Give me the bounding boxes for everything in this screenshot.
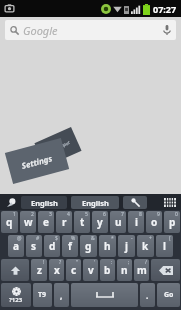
staticText: T9: [38, 290, 47, 300]
button[interactable]: Voice input: [123, 196, 147, 209]
staticText: ;: [128, 259, 130, 266]
button[interactable]: w: [20, 211, 36, 233]
staticText: :: [111, 259, 113, 266]
staticText: 7: [121, 211, 124, 218]
button[interactable]: j: [118, 235, 135, 257]
staticText: ?123: [9, 296, 23, 304]
button[interactable]: m: [134, 259, 149, 281]
button[interactable]: Google: [5, 20, 176, 40]
button[interactable]: h: [99, 235, 116, 257]
staticText: t: [80, 215, 85, 229]
button[interactable]: g: [80, 235, 97, 257]
staticText: h: [104, 239, 111, 253]
button[interactable]: i: [128, 211, 144, 233]
staticText: 3: [49, 211, 52, 218]
staticText: g: [85, 239, 92, 253]
staticText: l: [163, 239, 166, 253]
staticText: *: [111, 235, 114, 242]
staticText: o: [151, 215, 158, 229]
staticText: ?: [59, 259, 62, 266]
button[interactable]: r: [56, 211, 72, 233]
button[interactable]: b: [100, 259, 115, 281]
staticText: (: [169, 235, 171, 242]
staticText: -: [131, 235, 133, 242]
button[interactable]: l: [156, 235, 173, 257]
button[interactable]: t: [74, 211, 90, 233]
staticText: k: [142, 239, 149, 253]
staticText: +: [149, 235, 152, 242]
button[interactable]: Voice search: [158, 21, 176, 39]
button[interactable]: .: [140, 283, 155, 307]
staticText: n: [121, 263, 128, 277]
staticText: $: [55, 235, 58, 242]
staticText: ": [76, 259, 79, 266]
staticText: 8: [139, 211, 142, 218]
button[interactable]: Space: [71, 283, 138, 307]
staticText: p: [169, 215, 176, 229]
staticText: j: [125, 239, 128, 253]
staticText: 4: [67, 211, 70, 218]
staticText: #: [36, 235, 40, 242]
button[interactable]: q: [1, 211, 18, 233]
staticText: English: [31, 198, 58, 208]
button[interactable]: English: [71, 196, 119, 209]
button[interactable]: u: [110, 211, 126, 233]
staticText: 1: [13, 211, 16, 218]
staticText: !: [43, 259, 45, 266]
button[interactable]: x: [49, 259, 64, 281]
staticText: 2: [31, 211, 34, 218]
button[interactable]: ,: [54, 283, 69, 307]
staticText: 07:27: [153, 3, 177, 15]
button[interactable]: Go: [157, 283, 180, 307]
staticText: 6: [103, 211, 106, 218]
staticText: m: [137, 263, 147, 277]
button[interactable]: T9: [33, 283, 52, 307]
staticText: s: [31, 239, 37, 253]
staticText: v: [88, 263, 94, 277]
staticText: 0: [175, 211, 178, 218]
staticText: Google: [23, 23, 58, 38]
button[interactable]: p: [164, 211, 180, 233]
staticText: i: [135, 215, 138, 229]
staticText: &: [91, 235, 95, 242]
staticText: q: [6, 215, 13, 229]
staticText: b: [104, 263, 111, 277]
button[interactable]: d: [44, 235, 60, 257]
staticText: 5: [85, 211, 88, 218]
staticText: Switch input: [46, 139, 71, 155]
staticText: ,: [60, 290, 63, 301]
button[interactable]: c: [66, 259, 81, 281]
staticText: /: [145, 259, 147, 266]
staticText: f: [68, 239, 72, 253]
staticText: @: [17, 235, 22, 242]
staticText: x: [54, 263, 60, 277]
staticText: 9: [157, 211, 160, 218]
staticText: Settings: [20, 152, 54, 171]
button[interactable]: n: [117, 259, 132, 281]
button[interactable]: s: [26, 235, 42, 257]
staticText: a: [13, 239, 19, 253]
staticText: Go: [164, 290, 174, 300]
button[interactable]: a: [8, 235, 24, 257]
button[interactable]: v: [83, 259, 98, 281]
button[interactable]: e: [38, 211, 54, 233]
button[interactable]: k: [137, 235, 154, 257]
button[interactable]: Backspace: [151, 259, 180, 281]
button[interactable]: Symbols and settings: [1, 283, 31, 307]
button[interactable]: Keyboard settings: [4, 195, 18, 209]
button[interactable]: Hide keyboard: [159, 194, 181, 210]
staticText: c: [71, 263, 77, 277]
button[interactable]: o: [146, 211, 162, 233]
button[interactable]: English: [21, 196, 67, 209]
staticText: r: [62, 215, 67, 229]
staticText: e: [43, 215, 49, 229]
button[interactable]: f: [62, 235, 78, 257]
staticText: y: [97, 215, 103, 229]
button[interactable]: Shift: [1, 259, 29, 281]
staticText: English: [82, 198, 109, 208]
button[interactable]: y: [92, 211, 108, 233]
staticText: z: [37, 263, 42, 277]
staticText: .: [146, 290, 149, 301]
staticText: d: [49, 239, 56, 253]
button[interactable]: z: [31, 259, 47, 281]
